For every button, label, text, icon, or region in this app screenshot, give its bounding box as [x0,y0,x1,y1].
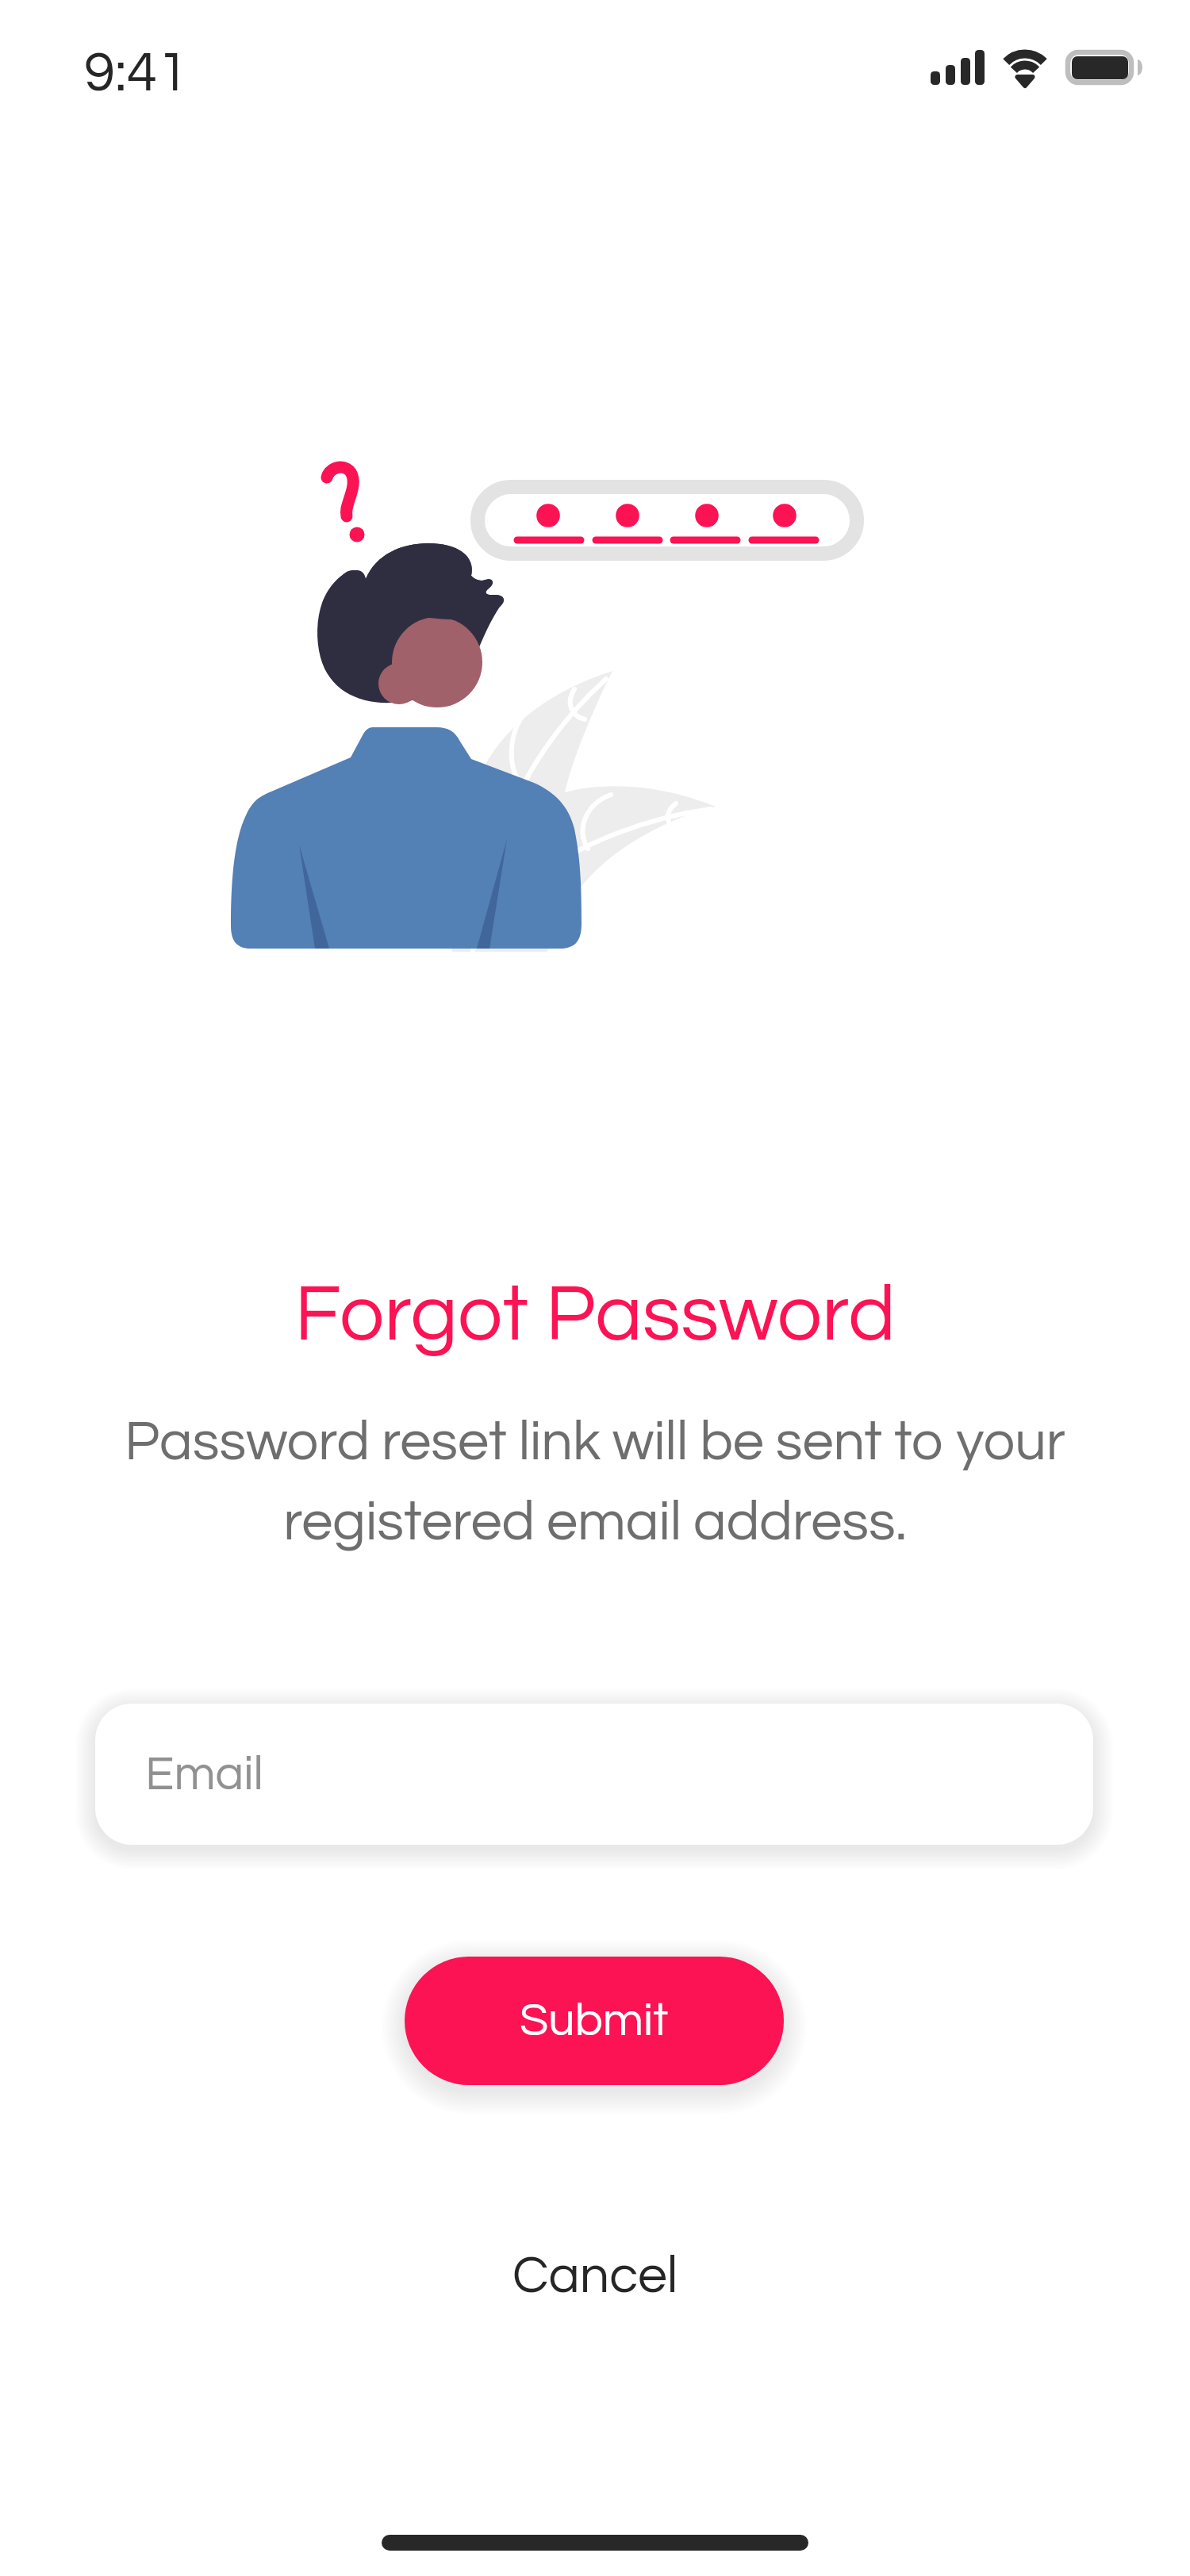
staticText: Forgot Password [0,1275,1190,1356]
staticText: Email [145,1750,263,1800]
button[interactable]: Cancel [468,2230,722,2322]
button[interactable]: Submit [405,1957,784,2085]
staticText: Password reset link will be sent to your… [48,1414,1142,1551]
staticText: 9:41 [84,44,189,102]
button[interactable]: Email [95,1704,1093,1845]
staticText: Submit [520,1997,669,2045]
other: Signal, Wi-Fi and battery status [924,32,1146,91]
staticText: Cancel [512,2249,678,2303]
